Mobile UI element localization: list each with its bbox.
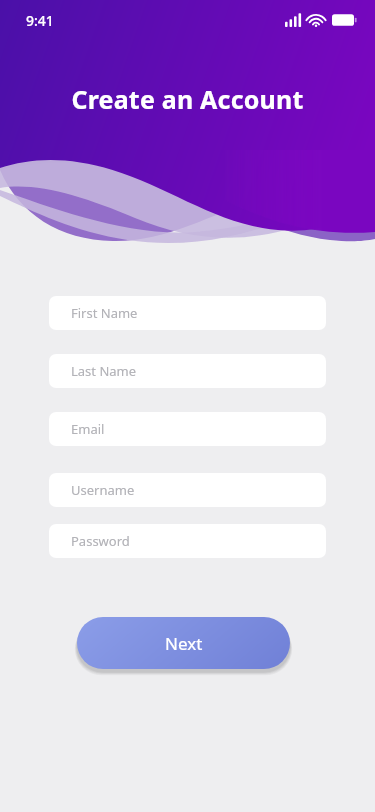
staticText: First Name [71, 304, 138, 322]
staticText: Username [71, 481, 135, 499]
staticText: Next [165, 632, 203, 655]
staticText: Email [71, 420, 105, 438]
staticText: Password [71, 532, 130, 550]
button[interactable]: Username [49, 473, 326, 507]
staticText: 9:41 [26, 11, 54, 30]
staticText: Create an Account [0, 82, 375, 116]
button[interactable]: Email [49, 412, 326, 446]
button[interactable]: First Name [49, 296, 326, 330]
button[interactable]: Last Name [49, 354, 326, 388]
button[interactable]: Password [49, 524, 326, 558]
staticText: Last Name [71, 362, 137, 380]
button[interactable]: Next [77, 617, 290, 669]
